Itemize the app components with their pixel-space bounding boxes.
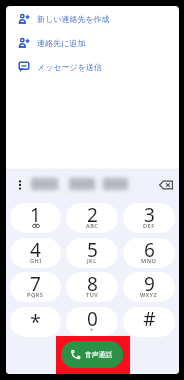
staticText: JKL (87, 257, 97, 265)
button[interactable]: 4 (10, 238, 61, 268)
button[interactable]: メッセージを送信 (6, 55, 179, 79)
staticText: + (90, 326, 94, 334)
staticText: DEF (143, 222, 155, 230)
button[interactable]: 3 (123, 203, 175, 233)
staticText: 4 (30, 238, 41, 263)
staticText: 新しい連絡先を作成 (37, 14, 110, 24)
staticText: メッセージを送信 (37, 62, 102, 72)
staticText: 3 (144, 203, 155, 228)
staticText: PQRS (27, 291, 44, 299)
button[interactable]: 新しい連絡先を作成 (6, 7, 179, 31)
button[interactable]: 0 (66, 307, 118, 337)
staticText: 8 (87, 272, 98, 297)
button[interactable]: 7 (10, 272, 61, 302)
staticText: 2 (87, 203, 98, 228)
button[interactable]: 音声通話 (61, 341, 123, 368)
staticText: # (143, 307, 156, 332)
staticText: 1 (30, 203, 41, 228)
staticText: WXYZ (140, 291, 158, 299)
staticText: 連絡先に追加 (37, 38, 86, 48)
button[interactable]: 2 (66, 203, 118, 233)
button[interactable]: 連絡先に追加 (6, 31, 179, 55)
staticText: 6 (144, 238, 155, 263)
staticText: 9 (144, 272, 155, 297)
staticText: 0 (87, 307, 98, 332)
staticText: 7 (30, 272, 41, 297)
staticText: 5 (87, 238, 98, 263)
button[interactable]: Backspace (155, 174, 177, 196)
staticText: 音声通話 (85, 350, 113, 359)
button[interactable]: 8 (66, 272, 118, 302)
button[interactable]: 9 (123, 272, 175, 302)
staticText: ABC (86, 222, 99, 230)
button[interactable]: * (10, 307, 61, 337)
staticText: * (30, 309, 41, 335)
staticText: TUV (86, 291, 99, 299)
button[interactable]: More options (9, 174, 31, 196)
button[interactable]: # (123, 307, 175, 337)
button[interactable]: 5 (66, 238, 118, 268)
staticText: MNO (141, 257, 157, 265)
staticText: GHI (30, 257, 42, 265)
button[interactable]: 6 (123, 238, 175, 268)
button[interactable]: 1 (10, 203, 61, 233)
